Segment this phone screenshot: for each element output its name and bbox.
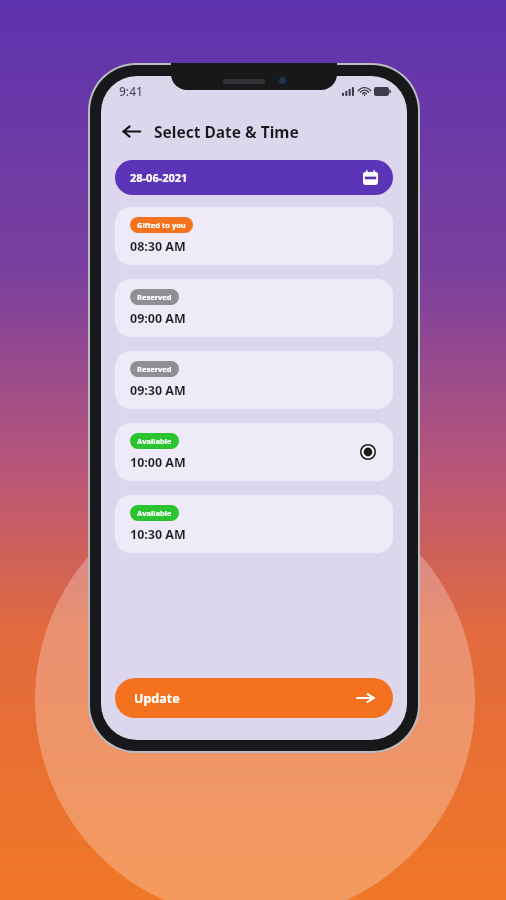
staticText: Reserved bbox=[137, 364, 172, 374]
staticText: Available bbox=[137, 436, 172, 446]
button[interactable]: Update bbox=[115, 678, 393, 718]
button[interactable]: Selected time slot bbox=[358, 442, 378, 462]
staticText: Available bbox=[137, 508, 172, 518]
staticText: Reserved bbox=[137, 292, 172, 302]
staticText: 10:00 AM bbox=[130, 454, 186, 471]
staticText: Gifted to you bbox=[137, 220, 186, 230]
staticText: 10:30 AM bbox=[130, 526, 186, 543]
staticText: 09:00 AM bbox=[130, 310, 186, 327]
staticText: 08:30 AM bbox=[130, 238, 186, 255]
button[interactable]: Reserved bbox=[115, 351, 393, 409]
staticText: 09:30 AM bbox=[130, 382, 186, 399]
staticText: Update bbox=[134, 690, 180, 707]
button[interactable]: Available bbox=[115, 423, 393, 481]
staticText: 9:41 bbox=[119, 83, 143, 99]
staticText: Select Date & Time bbox=[154, 121, 299, 142]
staticText: 28-06-2021 bbox=[130, 170, 188, 185]
button[interactable]: 28-06-2021 bbox=[115, 160, 393, 195]
button[interactable]: Back bbox=[117, 117, 145, 145]
button[interactable]: Available bbox=[115, 495, 393, 553]
button[interactable]: Reserved bbox=[115, 279, 393, 337]
button[interactable]: Gifted to you bbox=[115, 207, 393, 265]
